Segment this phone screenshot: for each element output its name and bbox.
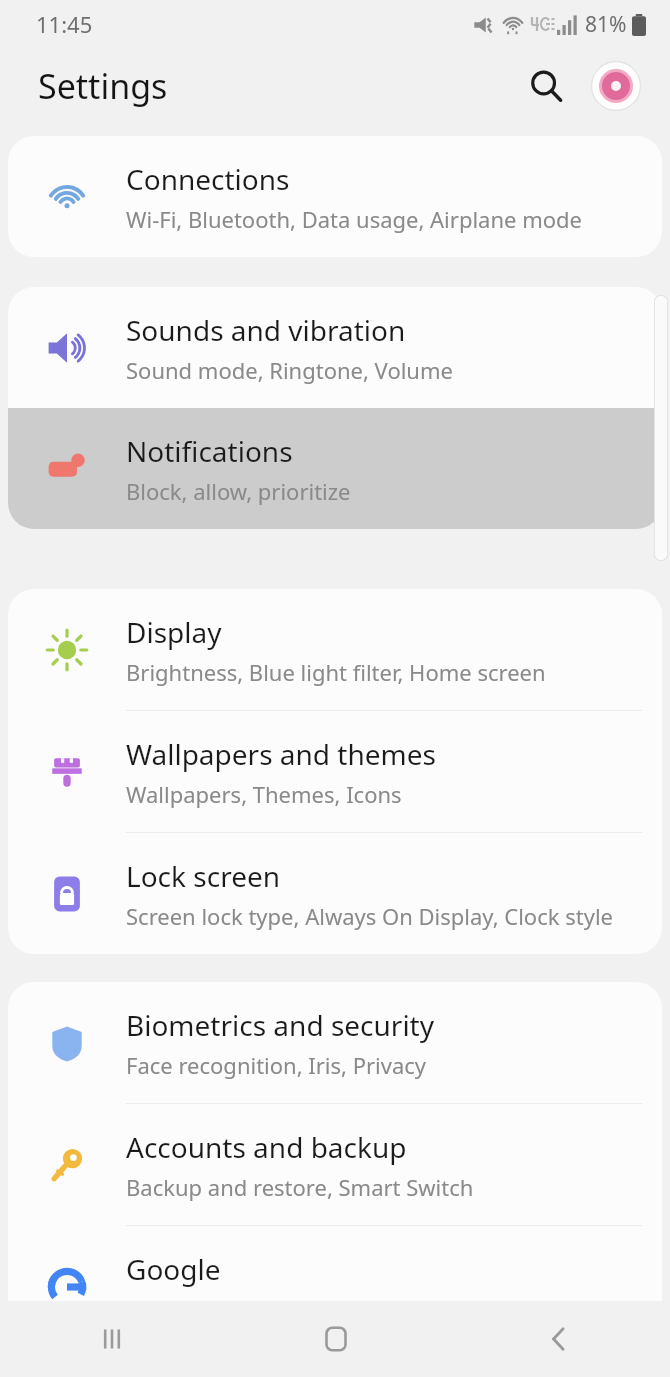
staticText: Face recognition, Iris, Privacy [126,1050,427,1080]
button[interactable]: Google [8,1226,662,1347]
staticText: 81% [585,10,627,39]
staticText: Sounds and vibration [126,311,406,349]
button[interactable]: Back [447,1301,670,1377]
staticText: Accounts and backup [126,1128,407,1166]
staticText: Sound mode, Ringtone, Volume [126,355,453,385]
button[interactable]: Lock screen [8,833,662,954]
staticText: 11:45 [36,9,93,39]
button[interactable]: Notifications [8,408,662,529]
button[interactable]: Display [8,589,662,710]
staticText: Screen lock type, Always On Display, Clo… [126,901,613,931]
staticText: Biometrics and security [126,1006,435,1044]
staticText: Backup and restore, Smart Switch [126,1172,474,1202]
staticText: Google [126,1250,221,1288]
staticText: Wi-Fi, Bluetooth, Data usage, Airplane m… [126,204,582,234]
button[interactable]: Recent apps [0,1301,224,1377]
button[interactable]: Search [518,58,574,114]
staticText: Display [126,613,222,651]
button[interactable]: Sounds and vibration [8,287,662,408]
button[interactable]: Accounts and backup [8,1104,662,1225]
button[interactable]: Biometrics and security [8,982,662,1103]
staticText: Wallpapers, Themes, Icons [126,779,402,809]
button[interactable]: Home [224,1301,447,1377]
staticText: Wallpapers and themes [126,735,436,773]
staticText: Lock screen [126,857,281,895]
staticText: Notifications [126,432,293,470]
staticText: Block, allow, prioritize [126,476,351,506]
staticText: Settings [38,63,168,109]
button[interactable]: Wallpapers and themes [8,711,662,832]
staticText: Connections [126,160,290,198]
button[interactable]: Connections [8,136,662,257]
staticText: Brightness, Blue light filter, Home scre… [126,657,546,687]
staticText: Google settings [126,1294,289,1324]
button[interactable]: Account profile [588,58,644,114]
